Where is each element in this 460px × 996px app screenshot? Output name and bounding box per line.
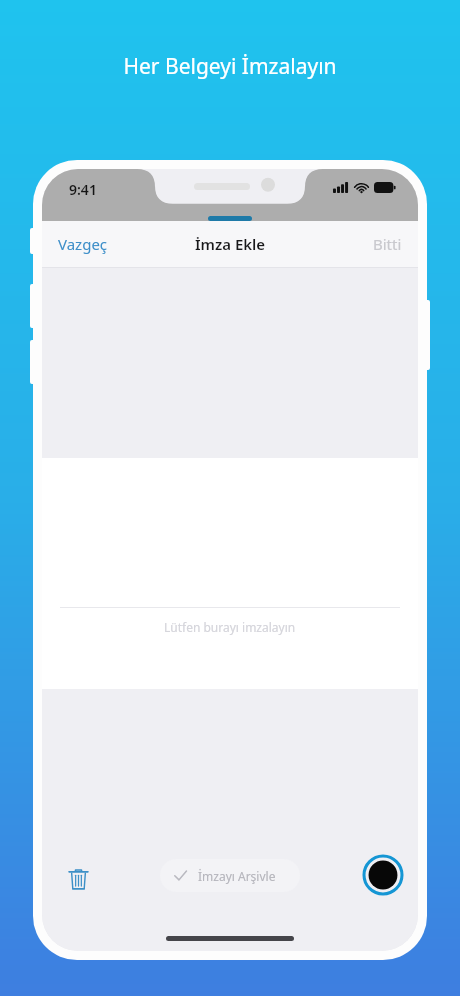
button[interactable]: Renk seç: [362, 854, 404, 896]
button[interactable]: İmzayı Arşivle: [160, 859, 300, 892]
staticText: İmzayı Arşivle: [198, 868, 276, 884]
button[interactable]: Sil: [56, 857, 100, 901]
staticText: 9:41: [69, 180, 97, 199]
staticText: Her Belgeyi İmzalayın: [123, 52, 337, 81]
button[interactable]: Vazgeç: [50, 228, 116, 260]
staticText: Bitti: [373, 234, 402, 254]
staticText: Vazgeç: [58, 234, 108, 254]
staticText: Lütfen burayı imzalayın: [164, 619, 296, 635]
staticText: İmza Ekle: [195, 234, 266, 254]
button[interactable]: Bitti: [365, 228, 410, 260]
